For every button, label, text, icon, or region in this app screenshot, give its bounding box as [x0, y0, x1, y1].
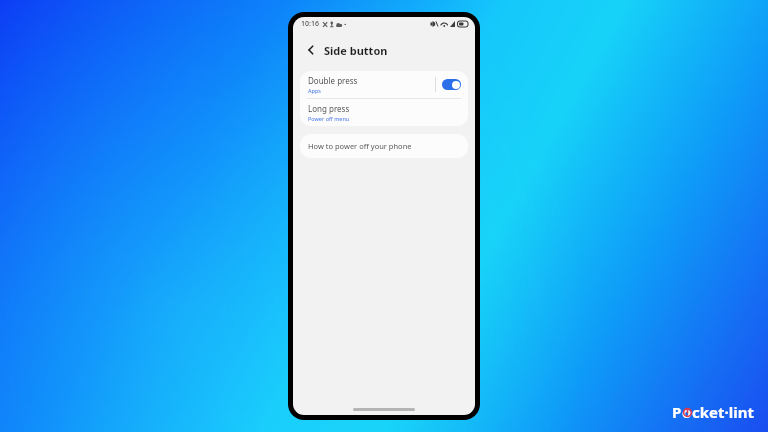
- staticText: cket·lint: [692, 402, 754, 422]
- button[interactable]: Double press toggle: [442, 79, 461, 90]
- staticText: Double press: [308, 75, 358, 86]
- staticText: P: [672, 402, 682, 422]
- staticText: o: [682, 402, 692, 422]
- staticText: Long press: [308, 103, 350, 114]
- staticText: How to power off your phone: [308, 141, 412, 151]
- button[interactable]: Back: [302, 41, 320, 59]
- staticText: Apps: [308, 87, 321, 94]
- button[interactable]: Double press: [300, 71, 468, 98]
- staticText: Side button: [324, 43, 388, 58]
- staticText: Power off menu: [308, 115, 350, 122]
- staticText: 10:16: [301, 19, 319, 29]
- button[interactable]: How to power off your phone: [300, 134, 468, 158]
- button[interactable]: Long press: [300, 99, 468, 126]
